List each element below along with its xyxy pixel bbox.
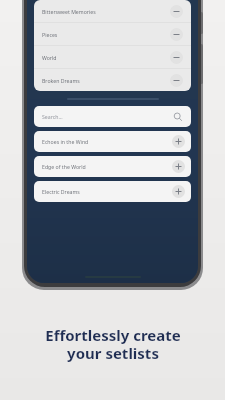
button[interactable]: Echoes in the Wind — [34, 131, 191, 152]
button[interactable]: Electric Dreams — [34, 181, 191, 202]
staticText: Search... — [42, 113, 173, 120]
other: Search — [173, 112, 183, 122]
button[interactable]: Pieces — [34, 23, 191, 45]
button[interactable]: Add song — [172, 185, 185, 198]
staticText: World — [42, 54, 170, 61]
button[interactable]: Add song — [172, 135, 185, 148]
staticText: Effortlessly create your setlists — [45, 325, 181, 364]
staticText: Broken Dreams — [42, 77, 170, 84]
button[interactable]: Remove song — [170, 74, 183, 87]
staticText: Pieces — [42, 31, 170, 38]
button[interactable]: Remove song — [170, 5, 183, 18]
staticText: Bittersweet Memories — [42, 8, 170, 15]
staticText: Echoes in the Wind — [42, 138, 172, 145]
button[interactable]: Broken Dreams — [34, 69, 191, 91]
button[interactable]: Bittersweet Memories — [34, 0, 191, 22]
button[interactable]: Search... — [34, 106, 191, 127]
button[interactable]: Add song — [172, 160, 185, 173]
button[interactable]: Remove song — [170, 28, 183, 41]
button[interactable]: World — [34, 46, 191, 68]
button[interactable]: Remove song — [170, 51, 183, 64]
staticText: Electric Dreams — [42, 188, 172, 195]
button[interactable]: Edge of the World — [34, 156, 191, 177]
staticText: Edge of the World — [42, 163, 172, 170]
